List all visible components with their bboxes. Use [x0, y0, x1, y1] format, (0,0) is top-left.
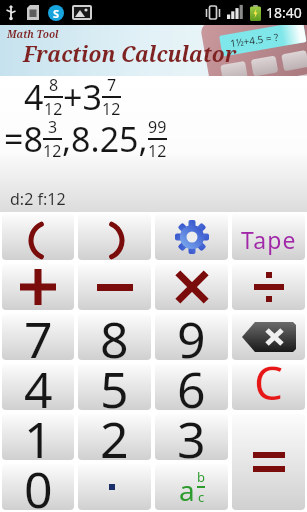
staticText: 18:40: [266, 3, 302, 22]
staticText: 4: [24, 74, 44, 120]
staticText: c: [198, 488, 205, 506]
staticText: 1: [24, 414, 53, 460]
staticText: 2: [100, 414, 129, 460]
staticText: 3: [48, 116, 58, 138]
staticText: 6: [177, 364, 206, 410]
staticText: d:2 f:12: [10, 188, 66, 210]
staticText: Tape: [241, 224, 297, 255]
staticText: 1½+4.5 = ?: [229, 30, 280, 50]
staticText: b: [197, 468, 205, 486]
staticText: C: [254, 364, 284, 410]
staticText: 8: [49, 74, 59, 96]
staticText: 8: [100, 314, 129, 360]
staticText: Math Tool: [7, 27, 59, 41]
staticText: 3: [177, 414, 206, 460]
staticText: 12: [148, 140, 167, 162]
staticText: 4: [24, 364, 53, 410]
staticText: +3: [63, 74, 102, 120]
staticText: 12: [44, 98, 63, 120]
staticText: a: [179, 471, 195, 509]
staticText: 9: [177, 314, 206, 360]
staticText: 7: [107, 74, 117, 96]
staticText: 0: [24, 464, 53, 510]
staticText: =8: [4, 116, 43, 162]
staticText: 12: [43, 140, 62, 162]
staticText: 5: [100, 364, 129, 410]
staticText: 12: [102, 98, 121, 120]
staticText: 7: [24, 314, 53, 360]
staticText: Fraction Calculator: [23, 40, 237, 69]
staticText: ,8.25,: [62, 116, 148, 162]
staticText: S: [53, 6, 60, 21]
staticText: 99: [148, 116, 167, 138]
